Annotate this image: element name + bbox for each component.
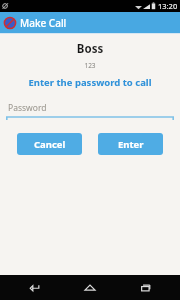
staticText: Enter — [118, 138, 144, 151]
staticText: Password — [8, 102, 47, 114]
button[interactable]: Cancel — [17, 133, 82, 155]
staticText: 13:20 — [158, 1, 178, 11]
button[interactable]: Home — [70, 275, 110, 300]
staticText: 123 — [0, 61, 180, 70]
staticText: Enter the password to call — [0, 76, 180, 89]
button[interactable]: Enter — [98, 133, 163, 155]
staticText: Cancel — [34, 138, 66, 151]
staticText: Make Call — [20, 16, 67, 30]
button[interactable]: Back — [15, 275, 55, 300]
button[interactable]: Recent apps — [125, 275, 165, 300]
staticText: Boss — [0, 41, 180, 57]
